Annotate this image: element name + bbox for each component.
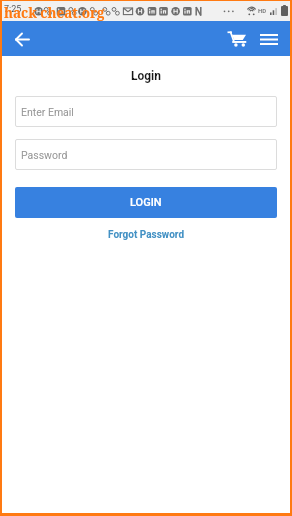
staticText: Password xyxy=(21,149,68,161)
staticText: Enter Email xyxy=(21,106,74,118)
staticText: hack cheat.org xyxy=(4,4,105,22)
button[interactable]: Cart xyxy=(223,25,251,53)
button[interactable]: Forgot Password xyxy=(104,227,189,243)
button[interactable]: Menu xyxy=(255,25,283,53)
button[interactable]: Enter Email xyxy=(15,96,277,127)
staticText: LOGIN xyxy=(130,196,162,209)
staticText: Login xyxy=(2,69,290,83)
staticText: 7:25 xyxy=(4,4,22,15)
staticText: HD xyxy=(258,7,267,14)
button[interactable]: Password xyxy=(15,139,277,170)
button[interactable]: LOGIN xyxy=(15,187,277,218)
button[interactable]: Back xyxy=(8,25,36,53)
